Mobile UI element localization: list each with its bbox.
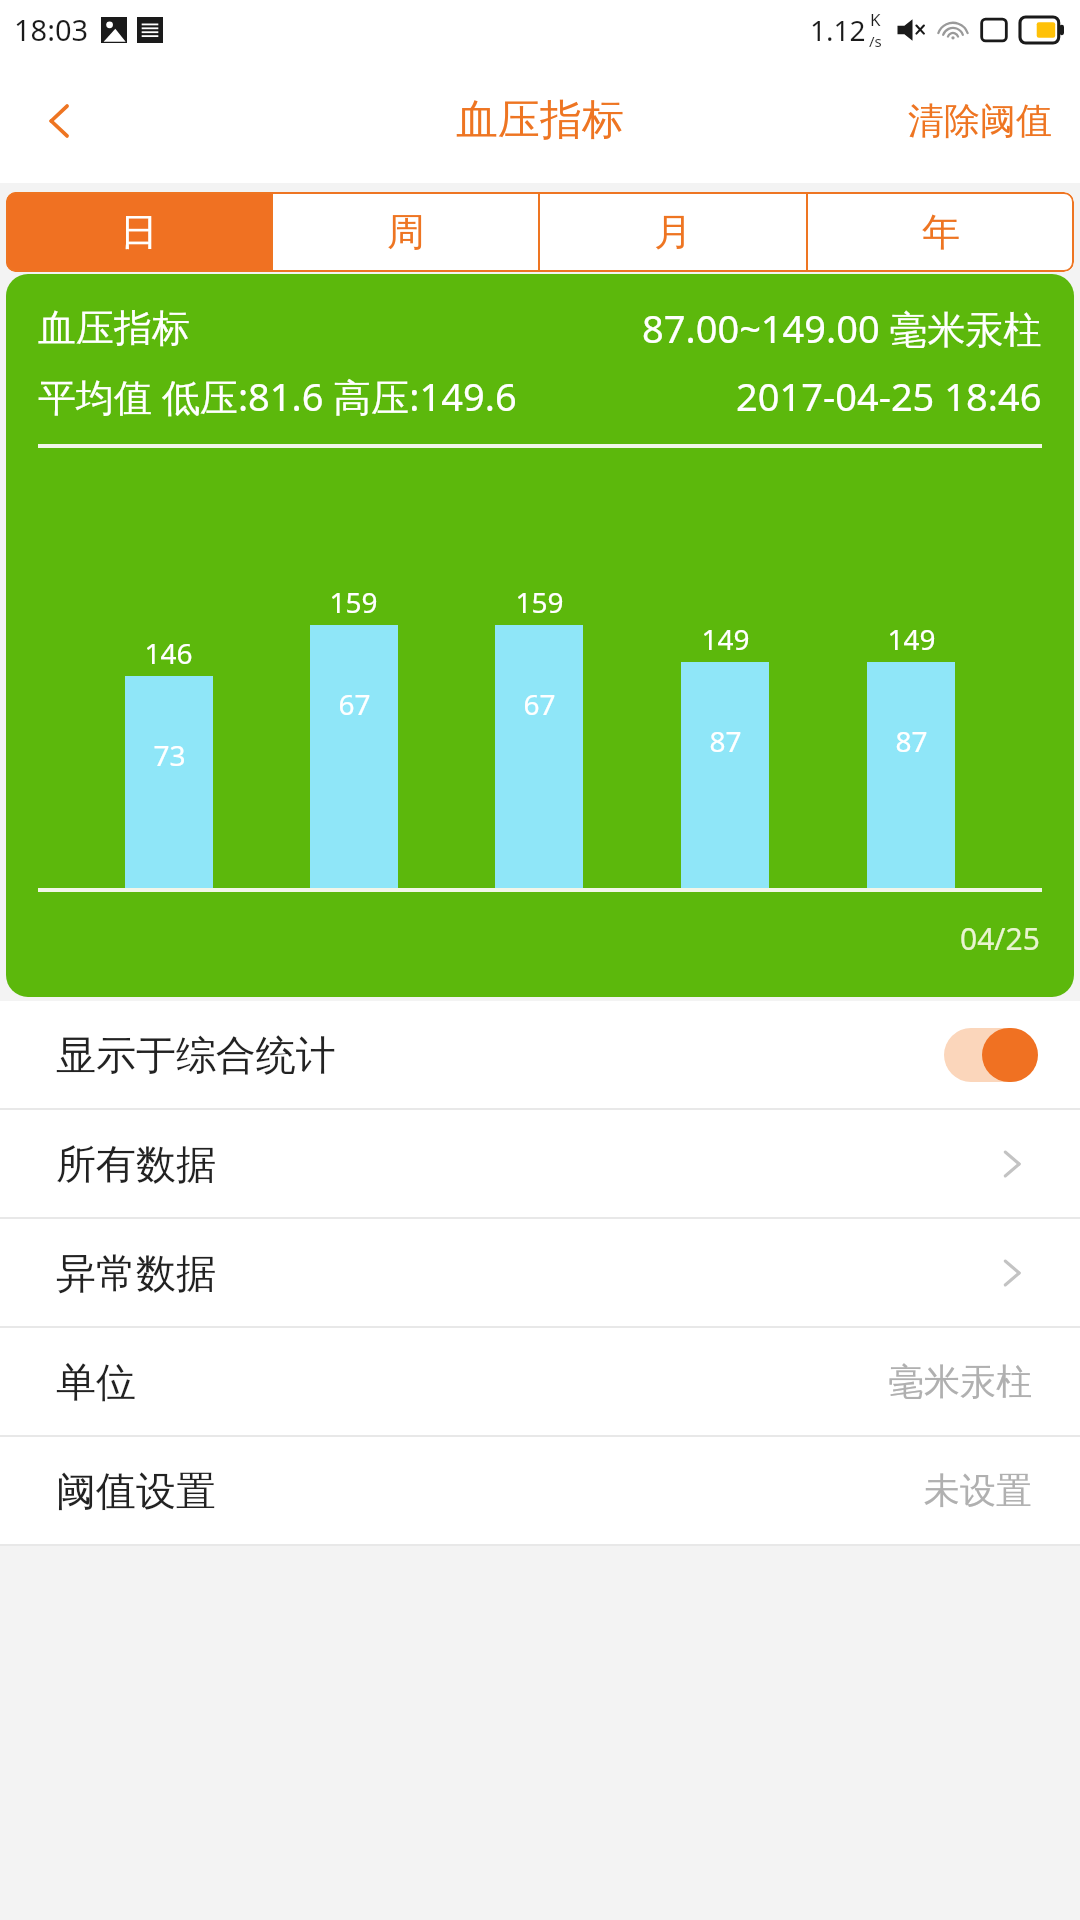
button[interactable]: 异常数据 (0, 1219, 1080, 1326)
staticText: 单位 (56, 1357, 136, 1407)
button[interactable]: Back (0, 58, 120, 183)
staticText: 146 (144, 634, 193, 672)
button[interactable]: 阈值设置 (0, 1437, 1080, 1544)
staticText: 日 (120, 208, 158, 256)
button[interactable]: 清除阈值 (880, 58, 1080, 183)
staticText: 87.00~149.00 毫米汞柱 (642, 302, 1042, 354)
staticText: 阈值设置 (56, 1466, 216, 1516)
staticText: 67 (338, 685, 371, 723)
staticText: 1.12 (810, 11, 866, 49)
staticText: 平均值 低压:81.6 高压:149.6 (38, 370, 517, 422)
staticText: 67 (523, 685, 556, 723)
staticText: 月 (654, 208, 692, 256)
staticText: 04/25 (960, 918, 1040, 959)
staticText: 149 (701, 620, 750, 658)
staticText: 149 (887, 620, 936, 658)
staticText: 毫米汞柱 (888, 1359, 1032, 1404)
button[interactable]: 月 (540, 192, 806, 272)
button[interactable]: 所有数据 (0, 1110, 1080, 1217)
staticText: 所有数据 (56, 1139, 216, 1189)
staticText: 87 (895, 722, 928, 760)
staticText: K (870, 8, 881, 31)
staticText: 清除阈值 (908, 98, 1052, 143)
staticText: 周 (387, 208, 425, 256)
button[interactable]: 年 (808, 192, 1074, 272)
staticText: 159 (515, 583, 564, 621)
staticText: 87 (709, 722, 742, 760)
staticText: 显示于综合统计 (56, 1030, 336, 1080)
staticText: 异常数据 (56, 1248, 216, 1298)
button[interactable]: 单位 (0, 1328, 1080, 1435)
staticText: 年 (922, 208, 960, 256)
button[interactable]: 显示于综合统计 (0, 1001, 1080, 1108)
staticText: 未设置 (924, 1468, 1032, 1513)
button[interactable]: 周 (273, 192, 538, 272)
button[interactable]: 日 (6, 192, 271, 272)
staticText: /s (869, 31, 882, 51)
staticText: 159 (329, 583, 378, 621)
staticText: 血压指标 (38, 304, 190, 352)
staticText: 血压指标 (456, 94, 624, 147)
staticText: 18:03 (14, 10, 89, 49)
staticText: 73 (153, 736, 186, 774)
staticText: 2017-04-25 18:46 (736, 370, 1042, 422)
